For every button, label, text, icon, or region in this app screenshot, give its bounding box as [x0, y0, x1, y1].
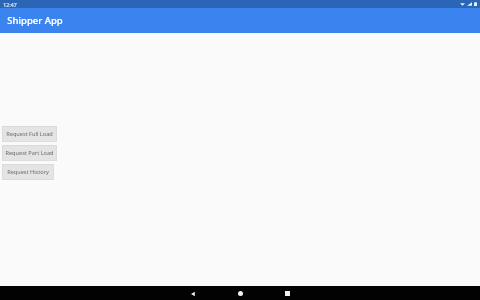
- button[interactable]: Request Part Load: [2, 145, 57, 161]
- button[interactable]: Home: [234, 287, 247, 300]
- staticText: Request Part Load: [5, 149, 54, 157]
- button[interactable]: Request History: [2, 164, 54, 180]
- staticText: Shipper App: [7, 14, 63, 27]
- button[interactable]: Back: [186, 287, 199, 300]
- button[interactable]: Request Full Load: [2, 126, 57, 142]
- staticText: Request History: [7, 168, 49, 176]
- button[interactable]: Recent apps: [281, 287, 294, 300]
- staticText: Request Full Load: [6, 130, 53, 138]
- staticText: 12:47: [3, 1, 17, 8]
